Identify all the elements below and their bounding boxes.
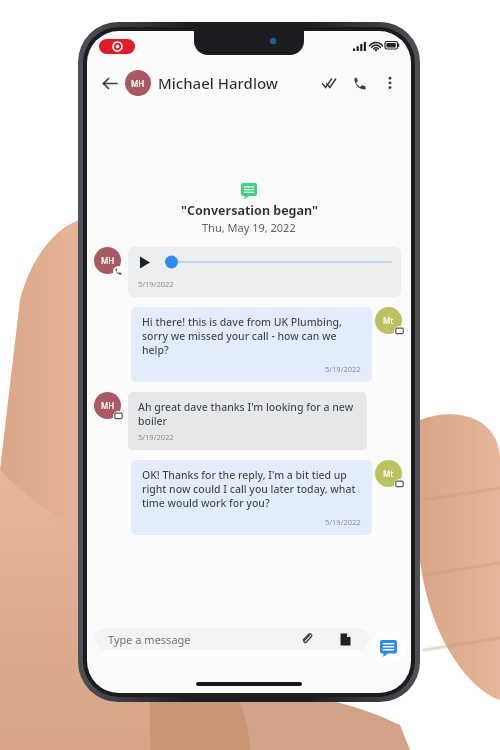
button[interactable]: MH [94,247,121,274]
button[interactable]: Call [348,71,372,95]
staticText: Type a message [108,632,191,647]
button[interactable]: Ah great dave thanks I'm looking for a n… [128,392,367,450]
staticText: 5/19/2022 [325,364,361,374]
button[interactable]: Type a message [95,628,369,650]
staticText: MH [101,400,115,411]
staticText: Michael Hardlow [158,73,278,93]
button[interactable]: OK! Thanks for the reply, I'm a bit tied… [131,460,372,535]
button[interactable]: Back [96,70,122,96]
button[interactable]: MH [94,392,121,419]
staticText: Mt [383,468,394,479]
staticText: 5/19/2022 [325,517,361,527]
button[interactable]: Mt [375,460,402,487]
staticText: Mt [383,315,394,326]
staticText: "Conversation began" [181,202,318,219]
staticText: Thu, May 19, 2022 [202,220,296,235]
button[interactable]: Play [128,247,401,297]
button[interactable]: Read receipts [318,71,342,95]
staticText: MH [101,255,115,266]
staticText: Hi there! this is dave from UK Plumbing,… [142,315,361,357]
button[interactable]: Mt [375,307,402,334]
staticText: Ah great dave thanks I'm looking for a n… [138,400,357,428]
button[interactable]: Attach file [296,628,318,650]
staticText: 5/19/2022 [138,432,174,442]
button[interactable]: More options [378,71,402,95]
staticText: 5/19/2022 [138,279,174,289]
button[interactable]: Send message [371,631,405,665]
button[interactable]: Attach document [334,628,356,650]
button[interactable]: Recording [99,39,135,54]
staticText: OK! Thanks for the reply, I'm a bit tied… [142,468,361,510]
staticText: MH [131,78,145,89]
button[interactable]: Hi there! this is dave from UK Plumbing,… [131,307,372,382]
other: Play [138,256,151,269]
